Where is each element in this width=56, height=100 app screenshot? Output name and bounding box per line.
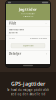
staticText: GPS-jagttider <box>11 80 45 87</box>
staticText: ⌄ <box>45 22 47 25</box>
staticText: Gældende jagttid i hele <box>9 29 24 31</box>
staticText: Se hvad du må jage på dit vildt <box>7 88 49 92</box>
staticText: sted og den aktuelle tid <box>10 92 45 96</box>
button[interactable]: Vælg vildt <box>6 20 50 26</box>
staticText: Find de aktuelle jagttider <box>20 13 35 15</box>
staticText: Vildt <box>9 22 16 25</box>
staticText: › <box>46 52 47 55</box>
staticText: 01.09.2024 – 31.01.2025 <box>30 37 47 39</box>
button[interactable]: Detaljer <box>6 51 50 56</box>
staticText: for dit jagtområde <box>22 16 33 17</box>
staticText: Periode <box>9 37 15 39</box>
staticText: Jagttider <box>19 6 37 12</box>
staticText: Detaljer <box>9 52 21 55</box>
staticText: SE I JAGTTIDER <box>22 45 33 47</box>
staticText: jagtdistrikt <box>9 32 18 33</box>
button[interactable]: SE I JAGTTIDER <box>11 43 45 48</box>
